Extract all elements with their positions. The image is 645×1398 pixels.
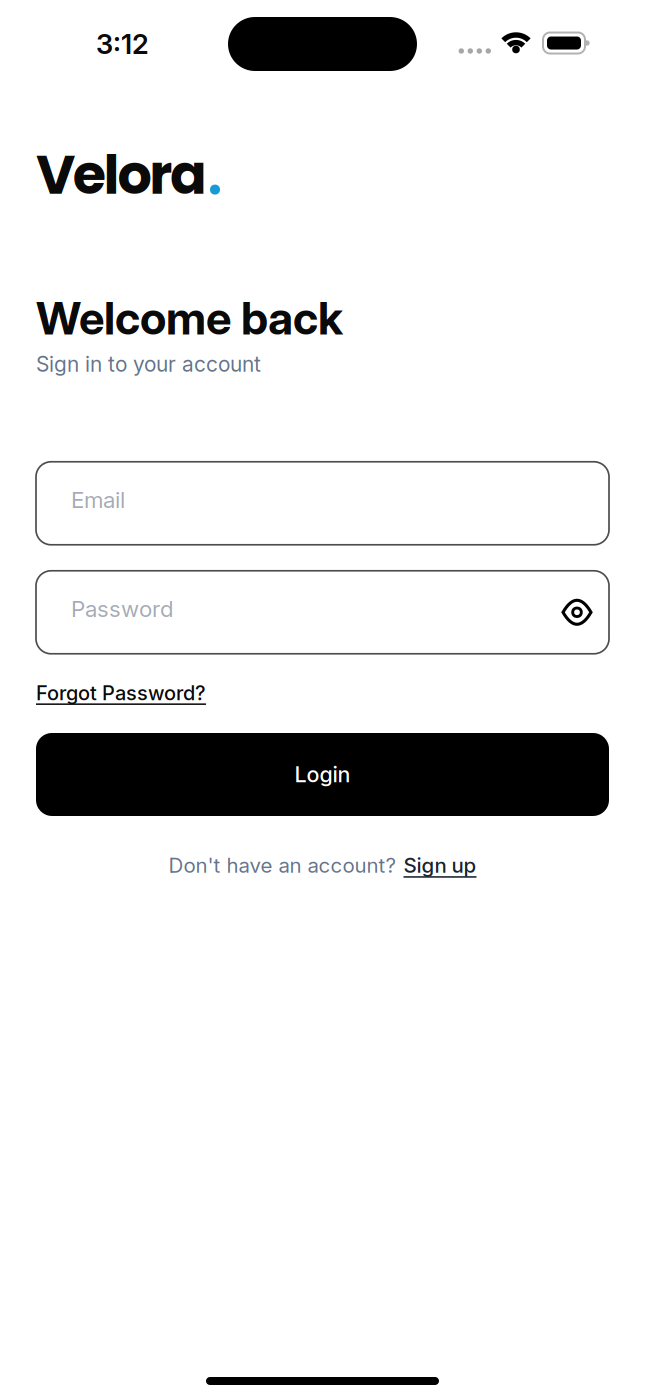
staticText: Velora bbox=[36, 137, 207, 213]
staticText: Forgot Password? bbox=[36, 681, 206, 705]
button[interactable]: Forgot Password? bbox=[36, 681, 206, 705]
staticText: 3:12 bbox=[96, 27, 149, 61]
staticText: Don't have an account? bbox=[168, 853, 396, 878]
button[interactable]: Sign up bbox=[403, 853, 476, 878]
staticText: Sign up bbox=[403, 853, 476, 878]
staticText: Sign in to your account bbox=[36, 351, 261, 377]
button[interactable]: Password bbox=[36, 571, 609, 654]
staticText: Login bbox=[294, 761, 350, 787]
staticText: Password bbox=[71, 595, 174, 622]
staticText: Email bbox=[71, 486, 125, 513]
staticText: Welcome back bbox=[36, 291, 343, 345]
button[interactable] bbox=[560, 595, 594, 629]
button[interactable]: Email bbox=[36, 462, 609, 545]
button[interactable]: Login bbox=[36, 733, 609, 816]
